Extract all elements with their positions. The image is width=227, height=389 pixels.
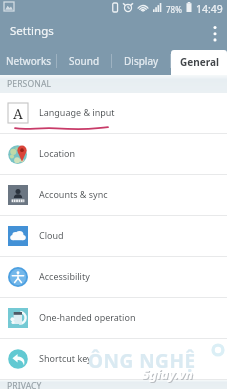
staticText: General bbox=[180, 55, 219, 69]
staticText: Sound bbox=[69, 54, 100, 68]
staticText: 5giay.vn bbox=[143, 366, 194, 384]
button[interactable]: Display bbox=[112, 48, 171, 75]
staticText: 14:49 bbox=[196, 2, 223, 16]
staticText: 78% bbox=[166, 4, 182, 15]
button[interactable]: One-handed operation bbox=[0, 298, 227, 339]
button[interactable]: Cloud bbox=[0, 216, 227, 257]
button[interactable]: Location bbox=[0, 134, 227, 175]
button[interactable]: Shortcut key bbox=[0, 339, 227, 380]
button[interactable]: More options bbox=[203, 17, 227, 48]
staticText: ÔNG NGHỆ bbox=[88, 348, 196, 374]
staticText: 5giay.vn bbox=[142, 365, 193, 383]
staticText: Shortcut key bbox=[39, 352, 92, 364]
staticText: Location bbox=[39, 147, 76, 159]
button[interactable]: Sound bbox=[57, 48, 112, 75]
button[interactable]: Accounts & sync bbox=[0, 175, 227, 216]
staticText: PERSONAL bbox=[7, 78, 52, 90]
staticText: Accounts & sync bbox=[39, 188, 108, 200]
button[interactable]: A bbox=[0, 93, 227, 134]
staticText: Cloud bbox=[39, 229, 64, 241]
staticText: One-handed operation bbox=[39, 311, 136, 323]
staticText: Display bbox=[124, 54, 159, 68]
staticText: Networks bbox=[6, 54, 52, 68]
button[interactable]: General bbox=[171, 50, 227, 75]
staticText: A bbox=[13, 104, 23, 123]
staticText: Settings bbox=[10, 23, 54, 39]
staticText: Accessibility bbox=[39, 270, 90, 282]
staticText: Language & input bbox=[39, 106, 115, 118]
staticText: PRIVACY bbox=[7, 380, 42, 389]
button[interactable]: Networks bbox=[0, 48, 57, 75]
button[interactable]: Accessibility bbox=[0, 257, 227, 298]
